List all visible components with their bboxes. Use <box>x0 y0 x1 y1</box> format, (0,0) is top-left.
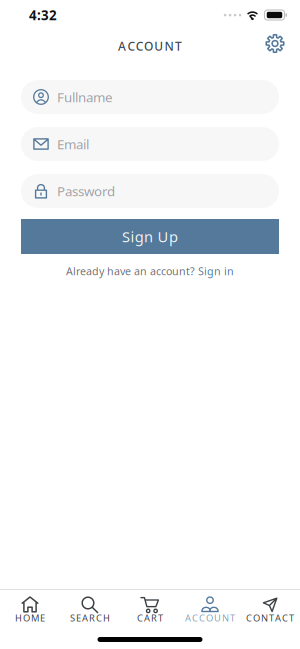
staticText: CART <box>137 612 163 624</box>
button[interactable]: Settings <box>260 31 290 61</box>
staticText: ACCOUNT <box>118 38 182 54</box>
button[interactable]: Fullname <box>21 80 279 114</box>
staticText: Already have an account? <box>66 264 195 278</box>
button[interactable]: HOME <box>0 595 60 625</box>
staticText: HOME <box>15 612 45 624</box>
button[interactable]: Sign in <box>198 264 234 278</box>
staticText: 4:32 <box>29 6 57 24</box>
staticText: Sign in <box>198 264 234 278</box>
staticText: CONTACT <box>246 612 294 624</box>
staticText: SEARCH <box>70 612 110 624</box>
staticText: Email <box>57 135 89 153</box>
button[interactable]: Password <box>21 174 279 208</box>
staticText: Fullname <box>57 88 113 106</box>
button[interactable]: CART <box>120 595 180 625</box>
button[interactable]: ACCOUNT <box>180 595 240 625</box>
button[interactable]: Email <box>21 127 279 161</box>
button[interactable]: CONTACT <box>240 595 300 625</box>
staticText: Password <box>57 182 115 200</box>
staticText: Sign Up <box>122 227 178 246</box>
button[interactable]: SEARCH <box>60 595 120 625</box>
button[interactable]: Sign Up <box>21 219 279 254</box>
staticText: ACCOUNT <box>185 612 235 624</box>
